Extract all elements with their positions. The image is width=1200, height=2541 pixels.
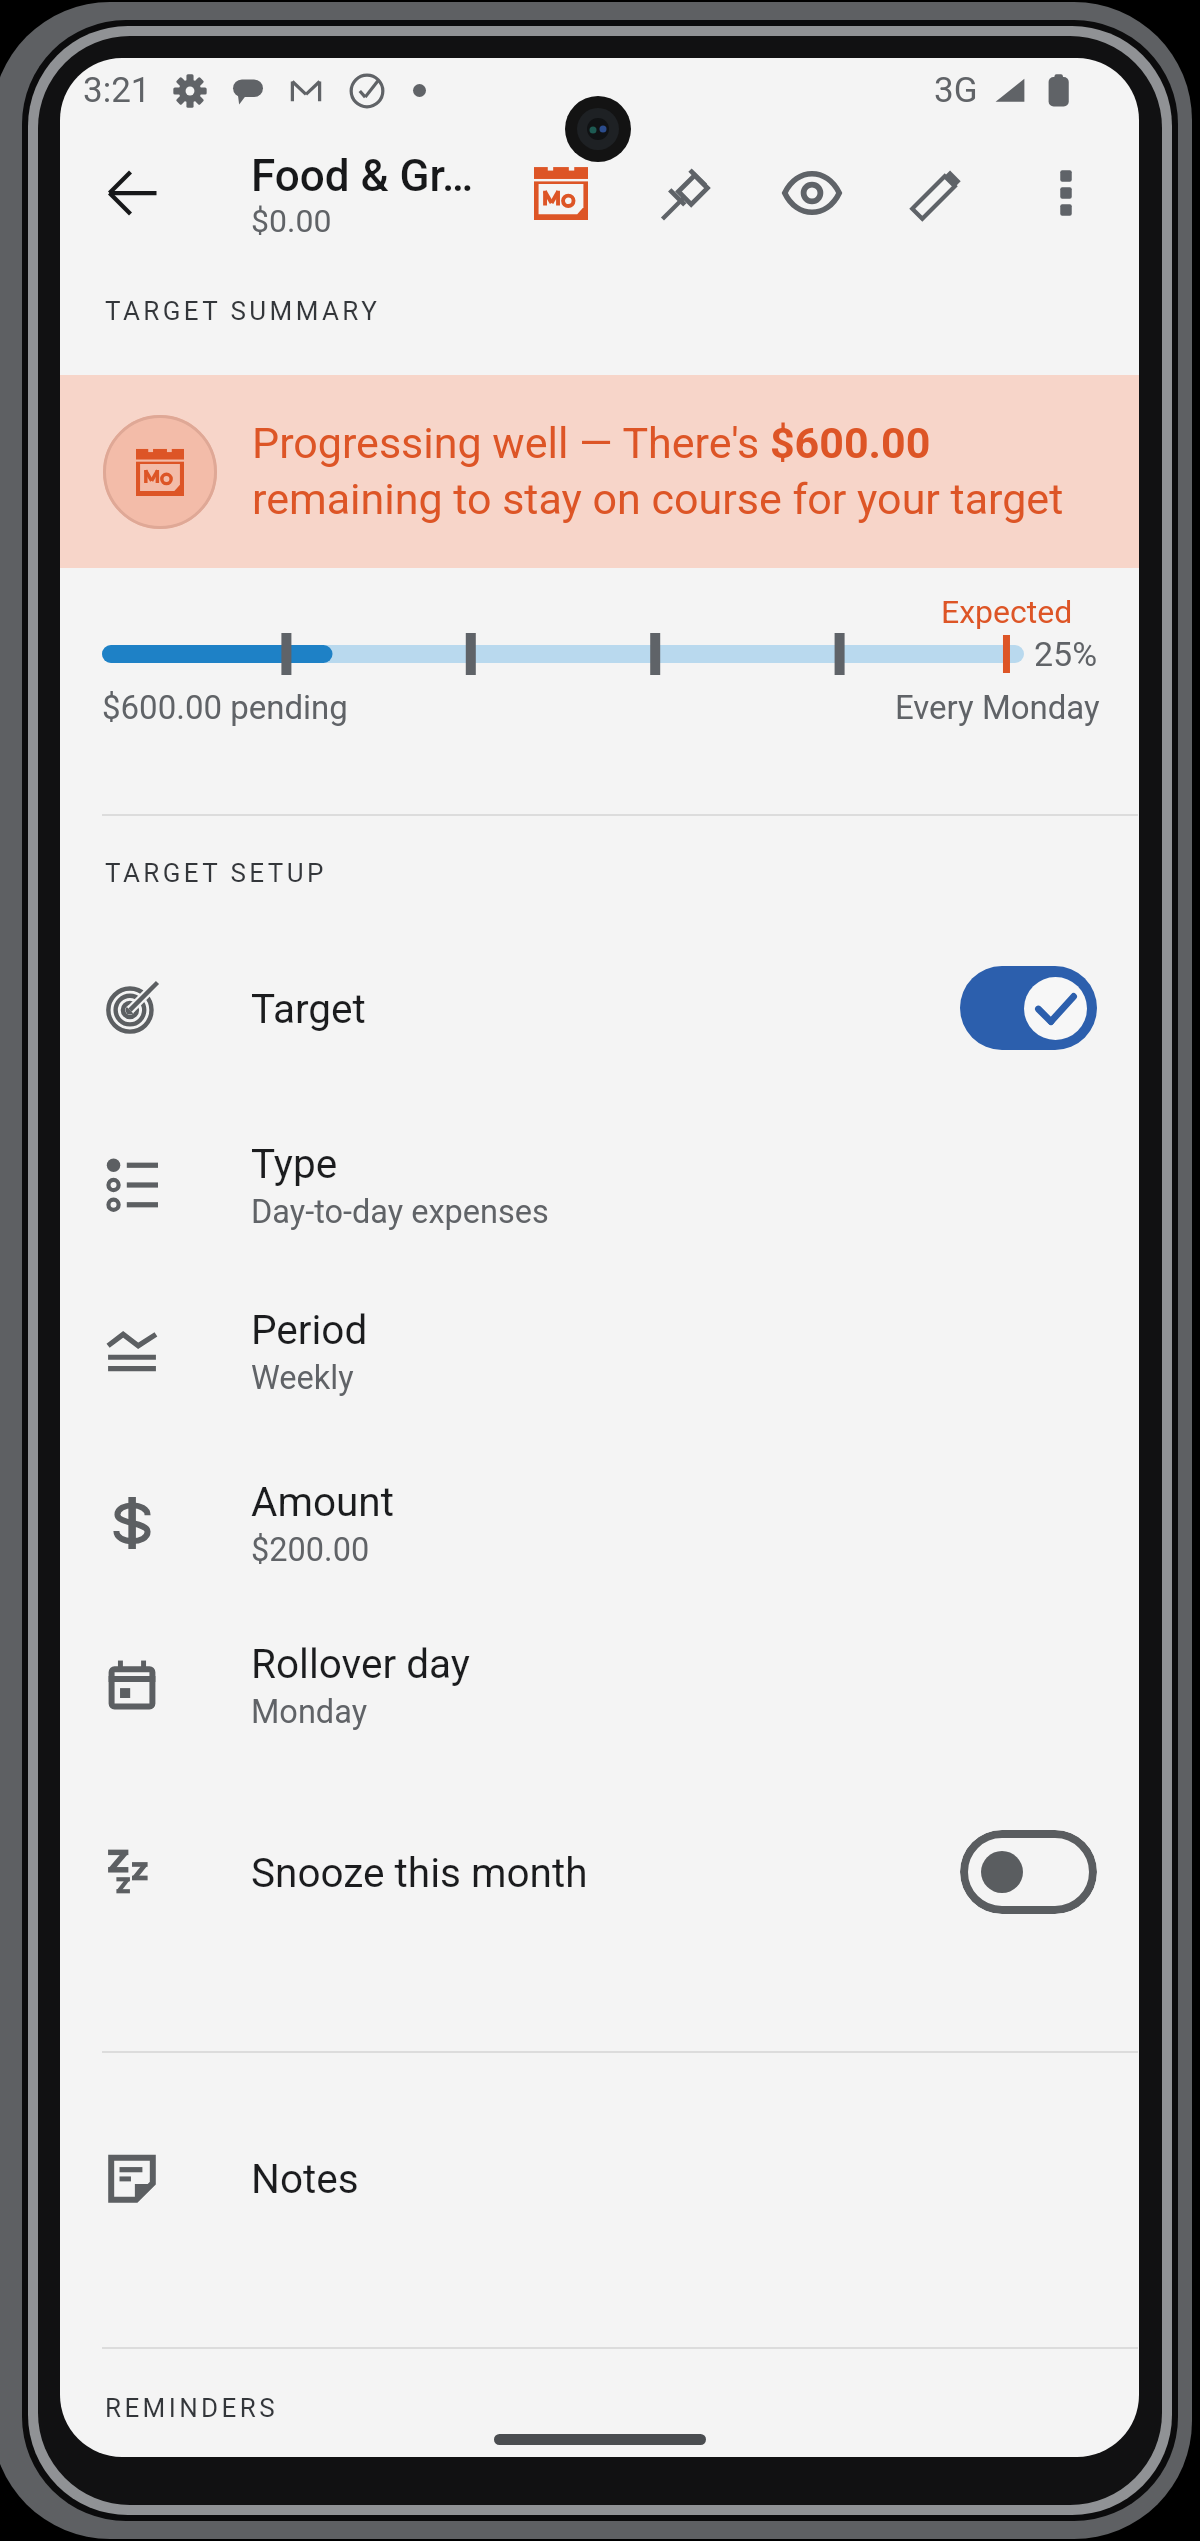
staticText: $600.00 pending: [102, 688, 348, 727]
staticText: REMINDERS: [105, 2393, 279, 2423]
staticText: Target: [251, 985, 366, 1032]
staticText: Monday: [251, 1693, 368, 1731]
button[interactable]: Back: [78, 138, 188, 248]
staticText: Weekly: [251, 1359, 354, 1397]
button[interactable]: Rollover day: [60, 1601, 1139, 1769]
staticText: Food & Gr…: [251, 150, 474, 202]
staticText: TARGET SUMMARY: [105, 296, 381, 326]
button[interactable]: Amount: [60, 1439, 1139, 1607]
button[interactable]: Toggle target on: [960, 966, 1097, 1050]
staticText: Type: [251, 1140, 338, 1187]
button[interactable]: Snooze this month: [60, 1797, 1139, 1947]
staticText: TARGET SETUP: [105, 858, 327, 888]
button[interactable]: Pin: [633, 138, 743, 248]
staticText: $0.00: [251, 202, 332, 240]
staticText: Expected: [941, 593, 1073, 631]
button[interactable]: Watch: [757, 138, 867, 248]
button[interactable]: Edit: [883, 138, 993, 248]
staticText: Amount: [251, 1478, 394, 1525]
button[interactable]: Calendar: [506, 138, 616, 248]
staticText: Day-to-day expenses: [251, 1193, 549, 1231]
staticText: Progressing well — There's $600.00 remai…: [252, 418, 1064, 525]
button[interactable]: Type: [60, 1101, 1139, 1269]
button[interactable]: Notes: [60, 2103, 1139, 2253]
button[interactable]: Toggle snooze this month: [960, 1830, 1097, 1914]
button[interactable]: More options: [1011, 138, 1121, 248]
staticText: 3G: [934, 70, 978, 111]
button[interactable]: Period: [60, 1267, 1139, 1435]
staticText: Period: [251, 1306, 368, 1353]
button[interactable]: Target: [60, 933, 1139, 1083]
staticText: Rollover day: [251, 1640, 470, 1687]
staticText: 25%: [1034, 634, 1098, 674]
staticText: 3:21: [83, 70, 151, 111]
staticText: Every Monday: [895, 688, 1100, 727]
staticText: Snooze this month: [251, 1849, 588, 1896]
staticText: Notes: [251, 2155, 359, 2202]
staticText: $200.00: [251, 1531, 370, 1569]
